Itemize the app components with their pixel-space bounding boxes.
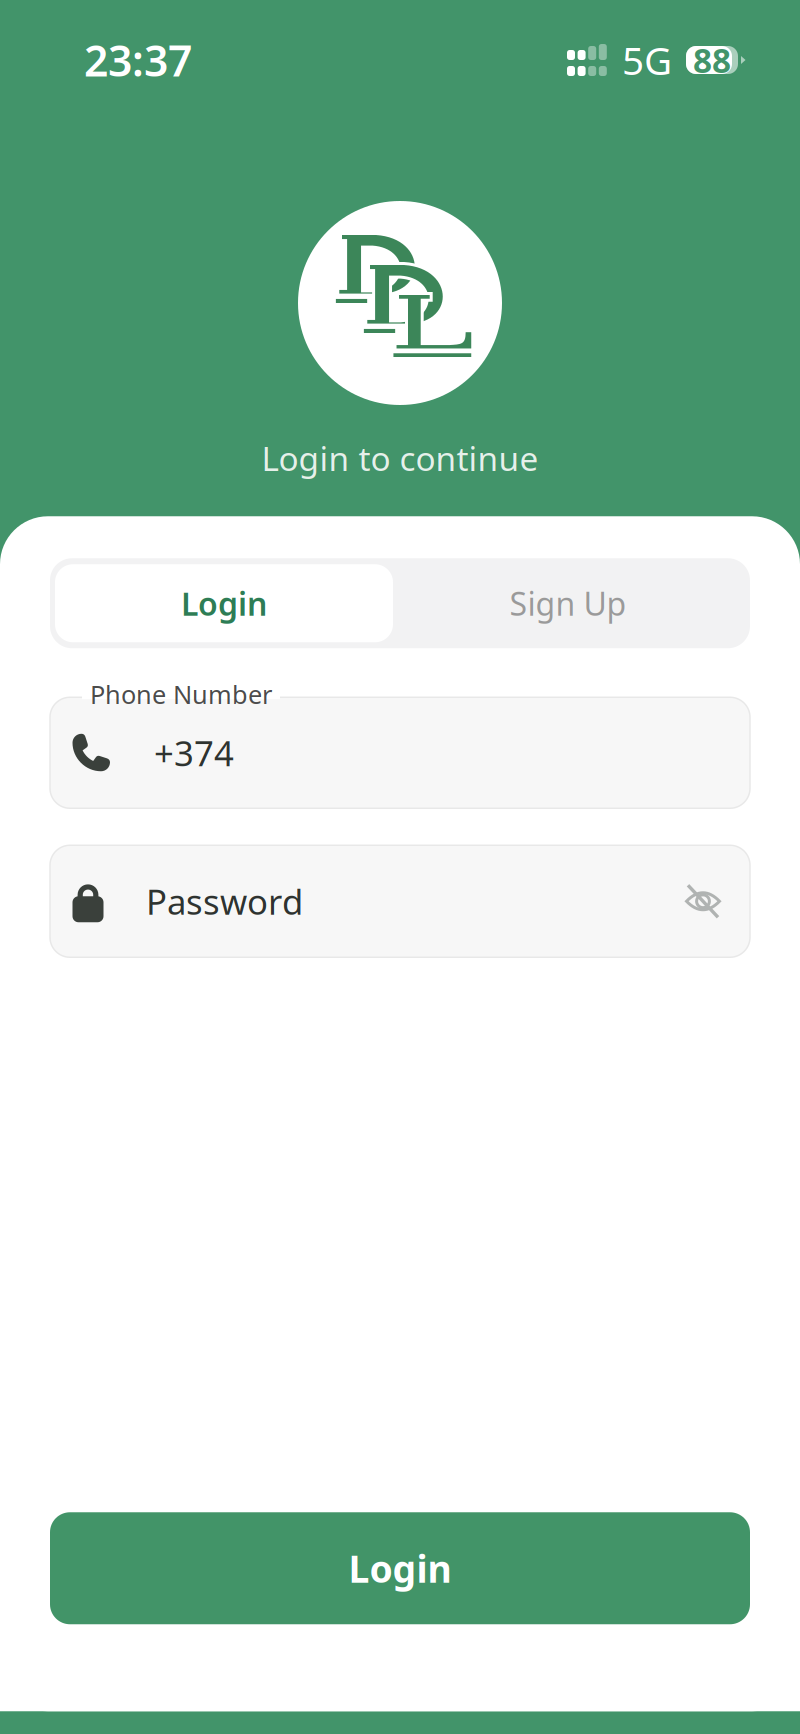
staticText: Sign Up	[509, 582, 626, 624]
staticText: 88	[693, 38, 731, 82]
button[interactable]: Login	[50, 1512, 750, 1624]
button[interactable]: Show password	[684, 882, 722, 920]
staticText: Login	[348, 1543, 451, 1593]
staticText: Phone Number	[90, 677, 272, 711]
staticText: +374	[154, 730, 234, 776]
button[interactable]: Login	[55, 564, 393, 642]
staticText: Login	[181, 582, 267, 624]
staticText: 5G	[622, 34, 672, 86]
staticText: Password	[146, 878, 303, 924]
staticText: Login to continue	[261, 436, 538, 480]
button[interactable]: Sign Up	[393, 564, 743, 642]
staticText: 23:37	[84, 32, 192, 88]
